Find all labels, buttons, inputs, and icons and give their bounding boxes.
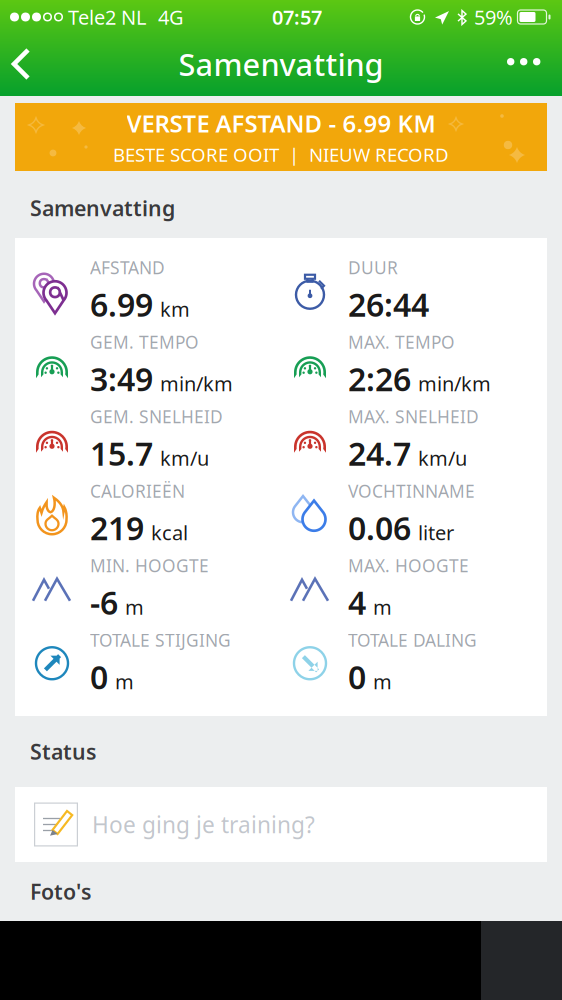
staticText: -6 xyxy=(90,581,118,623)
staticText: 219 xyxy=(90,506,144,549)
button[interactable]: Back xyxy=(0,34,48,96)
staticText: km xyxy=(160,296,190,322)
staticText: Samenvatting xyxy=(30,194,175,222)
staticText: 0.06 xyxy=(348,506,411,549)
staticText: kcal xyxy=(151,519,188,546)
staticText: km/u xyxy=(418,445,467,471)
staticText: DUUR xyxy=(348,256,398,279)
staticText: 3:49 xyxy=(90,357,153,400)
staticText: GEM. SNELHEID xyxy=(90,405,223,428)
staticText: Tele2 NL xyxy=(68,4,146,30)
staticText: 6.99 xyxy=(90,283,153,325)
staticText: 07:57 xyxy=(272,4,322,30)
staticText: m xyxy=(125,594,144,620)
button[interactable]: Hoe ging je training? xyxy=(15,787,547,862)
staticText: 0 xyxy=(348,655,366,698)
button[interactable]: More xyxy=(487,40,562,90)
staticText: TOTALE STIJGING xyxy=(90,628,231,651)
staticText: Samenvatting xyxy=(178,44,383,84)
staticText: 59% xyxy=(474,4,513,30)
staticText: Status xyxy=(30,737,97,766)
staticText: 4G xyxy=(158,4,184,30)
staticText: TOTALE DALING xyxy=(348,628,477,651)
staticText: VOCHTINNAME xyxy=(348,479,475,502)
staticText: Foto's xyxy=(30,877,92,906)
staticText: MAX. SNELHEID xyxy=(348,405,479,428)
staticText: 2:26 xyxy=(348,357,411,400)
staticText: m xyxy=(373,594,392,620)
staticText: km/u xyxy=(160,445,209,471)
staticText: MAX. HOOGTE xyxy=(348,554,469,577)
staticText: VERSTE AFSTAND - 6.99 KM xyxy=(126,107,435,139)
staticText: BESTE SCORE OOIT | NIEUW RECORD xyxy=(113,142,449,167)
staticText: 4 xyxy=(348,581,366,623)
staticText: 26:44 xyxy=(348,283,429,325)
staticText: min/km xyxy=(418,370,491,397)
staticText: MIN. HOOGTE xyxy=(90,554,209,577)
staticText: CALORIEËN xyxy=(90,479,185,502)
staticText: Hoe ging je training? xyxy=(92,809,315,839)
staticText: min/km xyxy=(160,370,233,397)
staticText: 15.7 xyxy=(90,432,153,474)
staticText: m xyxy=(115,668,134,695)
staticText: 24.7 xyxy=(348,432,411,474)
staticText: m xyxy=(373,668,392,695)
staticText: GEM. TEMPO xyxy=(90,330,199,353)
staticText: liter xyxy=(418,519,454,546)
staticText: 0 xyxy=(90,655,108,698)
staticText: AFSTAND xyxy=(90,256,165,279)
staticText: MAX. TEMPO xyxy=(348,330,455,353)
